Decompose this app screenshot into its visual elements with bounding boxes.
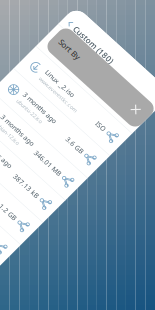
staticText: mint-21.iso bbox=[25, 232, 52, 239]
staticText: www.everestkc.com bbox=[25, 74, 75, 81]
staticText: 346.01 MB bbox=[74, 131, 108, 140]
button[interactable]: Close bbox=[108, 29, 123, 44]
staticText: 3 months ago bbox=[25, 158, 68, 167]
staticText: fedora-39.iso bbox=[25, 169, 57, 176]
staticText: Linux _2.iso bbox=[25, 64, 62, 73]
staticText: 5.98/71.33 bbox=[25, 43, 50, 50]
staticText: 4 months ago bbox=[25, 221, 68, 230]
staticText: ubuntu-22.iso bbox=[25, 106, 58, 113]
staticText: 3 months ago bbox=[25, 190, 68, 199]
staticText: Custom (180) bbox=[14, 12, 65, 22]
button[interactable]: Linux _2.iso bbox=[0, 57, 130, 88]
button[interactable]: 4 months ago bbox=[0, 214, 130, 245]
staticText: 3.6 GB bbox=[87, 100, 108, 108]
button[interactable]: 3 months ago bbox=[0, 88, 130, 119]
staticText: arch-2024.iso bbox=[25, 200, 58, 207]
button[interactable]: 3 months ago bbox=[0, 120, 130, 151]
staticText: 3 months ago bbox=[25, 95, 68, 104]
button[interactable]: 3 months ago bbox=[0, 151, 130, 182]
button[interactable]: Custom (180) bbox=[0, 9, 130, 25]
button[interactable]: 3 months ago bbox=[0, 183, 130, 214]
staticText: B2515a_glinux64.iso bbox=[25, 32, 91, 41]
staticText: 387.13 kB bbox=[76, 163, 108, 171]
staticText: debian-12.iso bbox=[25, 137, 57, 144]
button[interactable]: B2515a_glinux64.iso bbox=[0, 25, 130, 56]
